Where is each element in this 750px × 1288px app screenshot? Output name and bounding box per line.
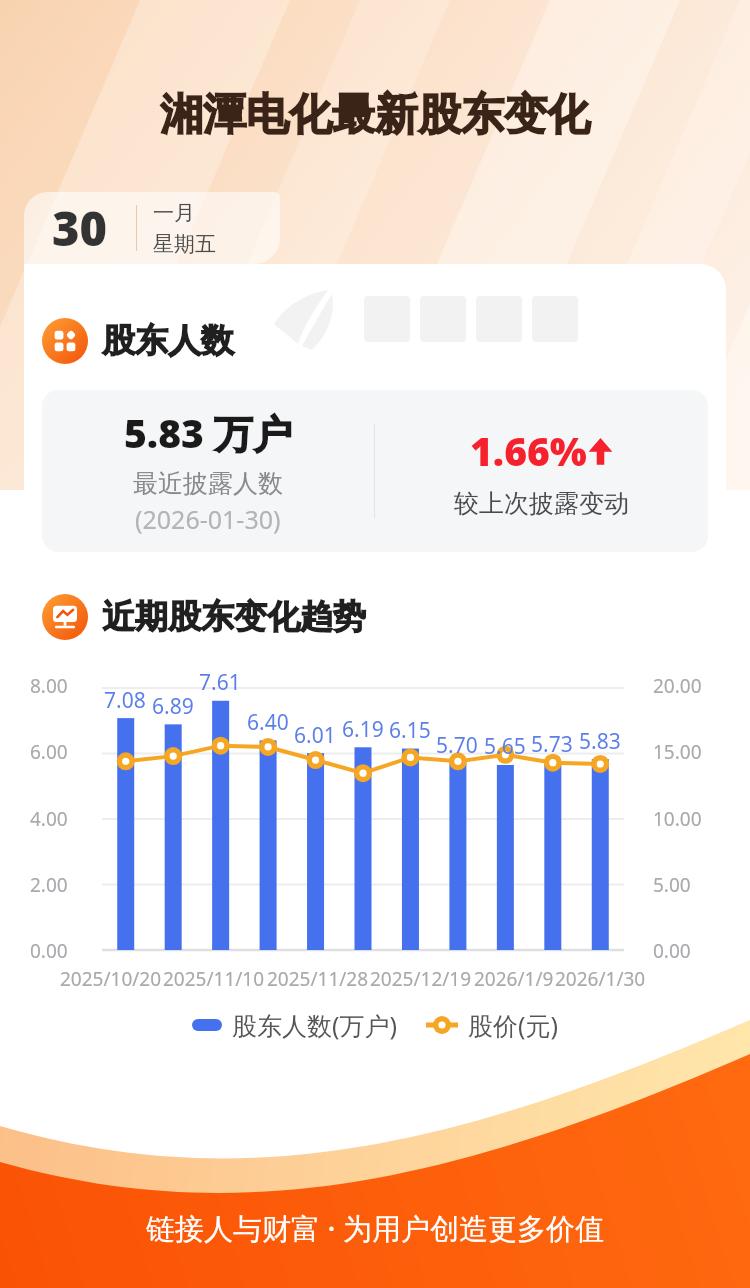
staticText: 0.00: [653, 938, 691, 964]
staticText: 6.40: [247, 708, 289, 737]
button[interactable]: 股东人数: [42, 318, 234, 364]
staticText: 6.19: [342, 715, 384, 744]
staticText: 6.00: [30, 739, 68, 765]
staticText: 股东人数(万户): [232, 1008, 398, 1042]
staticText: 8.00: [30, 673, 68, 699]
staticText: 6.01: [294, 721, 336, 750]
staticText: 5.83 万户: [124, 406, 292, 459]
staticText: 股价(元): [468, 1008, 559, 1042]
other: 近期股东变化趋势: [42, 594, 88, 640]
staticText: 最近披露人数: [133, 468, 283, 499]
staticText: 2025/11/10: [163, 966, 265, 992]
staticText: 5.83: [579, 727, 621, 756]
staticText: 近期股东变化趋势: [102, 596, 366, 638]
staticText: 2026/1/30: [555, 966, 646, 992]
staticText: 1.66%: [470, 424, 587, 477]
button[interactable]: 近期股东变化趋势: [42, 594, 366, 640]
staticText: 2025/11/28: [267, 966, 369, 992]
staticText: 2.00: [30, 872, 68, 898]
staticText: 较上次披露变动: [454, 488, 629, 519]
staticText: 4.00: [30, 806, 68, 832]
staticText: 0.00: [30, 938, 68, 964]
staticText: 7.08: [104, 686, 146, 715]
staticText: 2025/12/19: [370, 966, 472, 992]
staticText: 湘潭电化最新股东变化: [160, 88, 590, 142]
staticText: 6.89: [152, 692, 194, 721]
staticText: 一月: [153, 200, 195, 226]
staticText: 5.00: [653, 872, 691, 898]
other: 股东人数: [42, 318, 88, 364]
staticText: 5.73: [531, 730, 573, 759]
staticText: 2026/1/9: [474, 966, 554, 992]
staticText: 股东人数: [102, 320, 234, 362]
staticText: 6.15: [389, 716, 431, 745]
staticText: 20.00: [653, 673, 702, 699]
staticText: 30: [52, 196, 108, 260]
staticText: 5.65: [484, 732, 526, 761]
staticText: 链接人与财富 · 为用户创造更多价值: [146, 1208, 604, 1248]
staticText: 15.00: [653, 739, 702, 765]
staticText: (2026-01-30): [135, 502, 281, 536]
staticText: 7.61: [199, 668, 241, 697]
staticText: 10.00: [653, 806, 702, 832]
staticText: 5.70: [436, 731, 478, 760]
staticText: 2025/10/20: [60, 966, 162, 992]
button[interactable]: 5.83 万户: [42, 390, 708, 552]
staticText: 星期五: [153, 231, 216, 257]
